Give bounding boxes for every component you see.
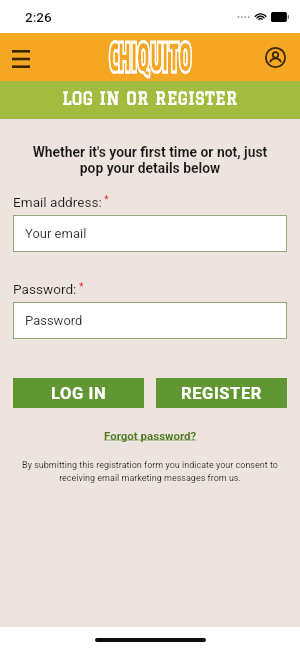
staticText: By submitting this registration form you… [19,460,281,483]
staticText: Your email [25,226,87,241]
button[interactable]: REGISTER [156,378,287,408]
staticText: Whether it's your first time or not, jus… [26,144,274,177]
button[interactable]: Open navigation menu [2,38,40,76]
staticText: Password [25,313,83,328]
staticText: LOG IN OR REGISTER [62,90,238,108]
staticText: * [104,193,109,206]
button[interactable]: LOG IN [13,378,144,408]
staticText: 2:26 [25,9,52,25]
staticText: Password: [13,281,77,297]
staticText: Email address: [13,194,102,210]
staticText: REGISTER [181,384,262,403]
button[interactable]: Password [13,302,287,339]
button[interactable]: Your email [13,215,287,252]
staticText: * [79,280,84,293]
staticText: LOG IN [51,384,107,403]
button[interactable]: My account [256,38,294,76]
button[interactable]: Forgot password? [98,426,203,445]
